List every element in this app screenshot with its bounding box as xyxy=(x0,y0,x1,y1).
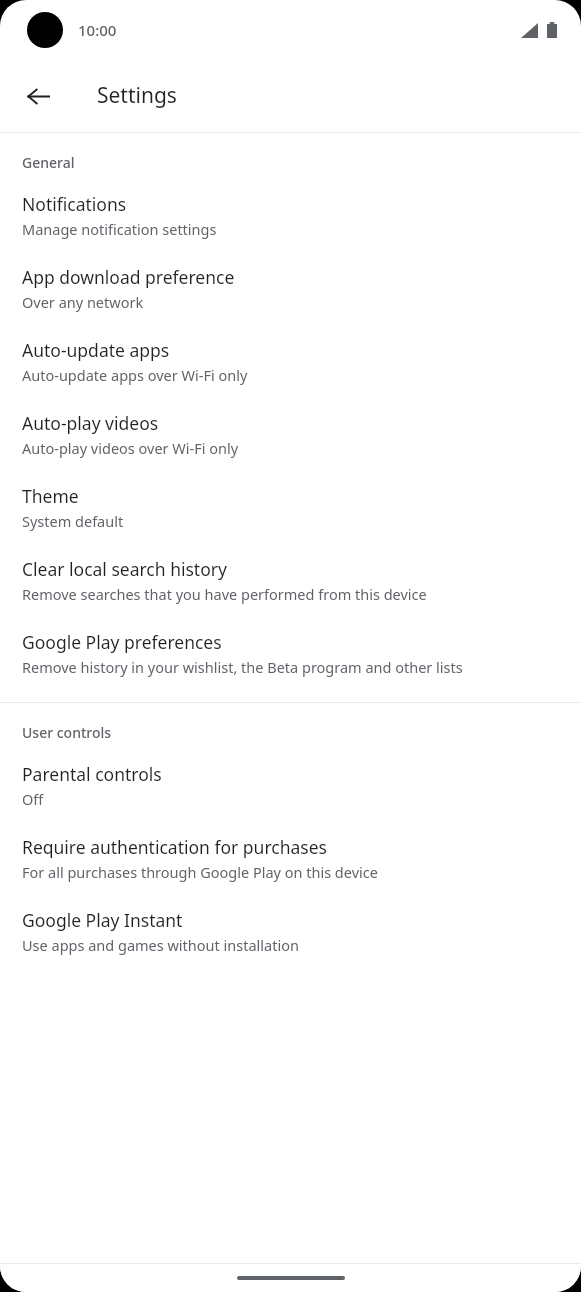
button[interactable]: Parental controls xyxy=(0,748,581,821)
staticText: Google Play Instant xyxy=(22,908,183,932)
button[interactable]: Theme xyxy=(0,470,581,543)
button[interactable]: Auto-update apps xyxy=(0,324,581,397)
button[interactable]: Auto-play videos xyxy=(0,397,581,470)
staticText: Google Play preferences xyxy=(22,630,222,654)
button[interactable]: App download preference xyxy=(0,251,581,324)
staticText: Auto-play videos xyxy=(22,411,159,435)
staticText: Use apps and games without installation xyxy=(22,935,299,955)
staticText: Auto-update apps xyxy=(22,338,170,362)
staticText: Auto-play videos over Wi-Fi only xyxy=(22,438,239,458)
staticText: User controls xyxy=(22,723,112,742)
button[interactable]: Require authentication for purchases xyxy=(0,821,581,894)
staticText: Off xyxy=(22,789,44,809)
button[interactable]: Google Play preferences xyxy=(0,616,581,689)
staticText: System default xyxy=(22,511,124,531)
staticText: Remove history in your wishlist, the Bet… xyxy=(22,657,463,677)
staticText: Auto-update apps over Wi-Fi only xyxy=(22,365,248,385)
staticText: General xyxy=(22,153,75,172)
staticText: Theme xyxy=(22,484,79,508)
staticText: Remove searches that you have performed … xyxy=(22,584,427,604)
staticText: Manage notification settings xyxy=(22,219,217,239)
staticText: Require authentication for purchases xyxy=(22,835,327,859)
button[interactable]: Notifications xyxy=(0,178,581,251)
staticText: For all purchases through Google Play on… xyxy=(22,862,378,882)
button[interactable]: Back xyxy=(14,72,62,120)
staticText: App download preference xyxy=(22,265,235,289)
staticText: Notifications xyxy=(22,192,127,216)
staticText: Clear local search history xyxy=(22,557,227,581)
button[interactable]: Google Play Instant xyxy=(0,894,581,967)
staticText: Over any network xyxy=(22,292,144,312)
staticText: Settings xyxy=(97,81,177,110)
staticText: 10:00 xyxy=(78,20,117,40)
staticText: Parental controls xyxy=(22,762,162,786)
button[interactable]: Clear local search history xyxy=(0,543,581,616)
